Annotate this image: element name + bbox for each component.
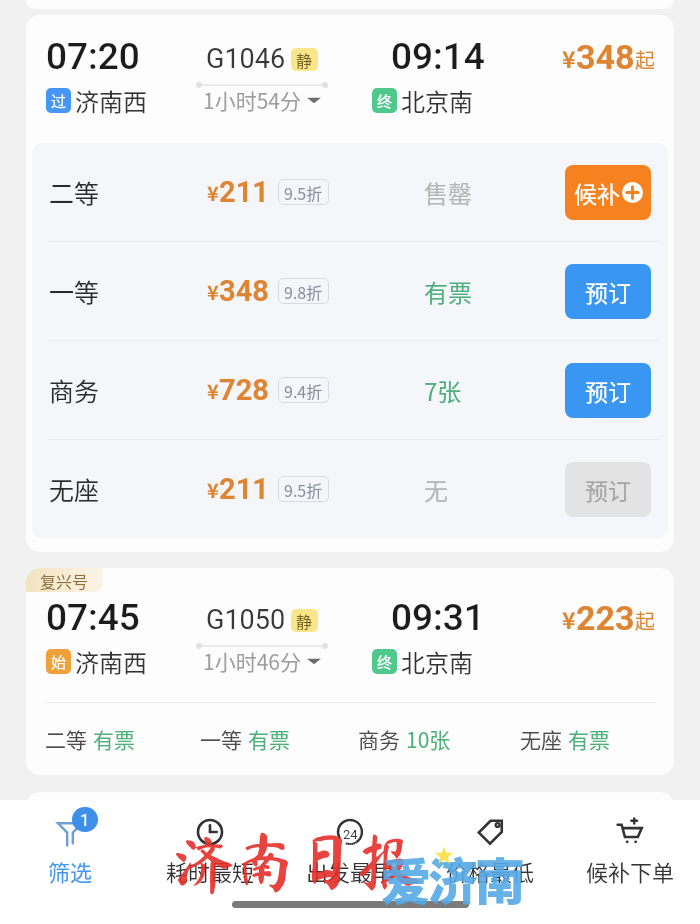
button[interactable]: 候补 (565, 165, 651, 220)
staticText: 耗时最短 (166, 855, 255, 887)
staticText: ¥ (562, 602, 576, 635)
staticText: 有票 (424, 274, 472, 309)
button[interactable]: 一等 (200, 724, 290, 754)
button[interactable]: 无座 (520, 724, 610, 754)
staticText: 济南西 (75, 83, 147, 118)
staticText: 爱济南 (381, 842, 522, 914)
staticText: 候补 (574, 176, 620, 209)
staticText: 价格最低 (446, 855, 535, 887)
button[interactable]: 商务 (358, 724, 451, 754)
staticText: 09:14 (391, 35, 485, 78)
staticText: 筛选 (48, 855, 93, 887)
staticText: 10张 (406, 724, 451, 754)
staticText: G1046 (206, 43, 286, 75)
staticText: 9.8折 (284, 280, 323, 303)
button[interactable]: 二等 (45, 724, 135, 754)
staticText: 07:20 (46, 35, 140, 78)
staticText: G1050 (206, 604, 286, 636)
staticText: 有票 (93, 724, 135, 754)
staticText: 静 (296, 48, 313, 71)
staticText: 211 (219, 472, 269, 506)
staticText: 211 (219, 175, 269, 209)
staticText: 起 (635, 45, 655, 74)
staticText: 预订 (585, 374, 631, 407)
button[interactable]: 一等 (32, 242, 668, 340)
staticText: 9.5折 (284, 181, 323, 204)
button[interactable]: 候补下单 (560, 800, 700, 887)
staticText: 1小时54分 (203, 85, 301, 115)
staticText: 1小时46分 (203, 646, 301, 676)
staticText: 商务 (49, 372, 100, 408)
button[interactable]: 07:20 (26, 15, 674, 552)
staticText: 二等 (49, 174, 100, 210)
staticText: 预订 (585, 275, 631, 308)
button[interactable]: 二等 (32, 143, 668, 241)
staticText: 起 (635, 606, 655, 635)
staticText: 223 (576, 598, 635, 638)
staticText: ¥ (207, 277, 219, 306)
button[interactable]: 无座 (32, 440, 668, 538)
staticText: 24 (343, 827, 358, 842)
staticText: 无座 (49, 471, 100, 507)
staticText: 348 (219, 274, 269, 308)
button[interactable]: 耗时最短 (140, 800, 280, 887)
staticText: 济南日报 (170, 828, 418, 894)
staticText: 二等 (45, 724, 87, 754)
staticText: 复兴号 (40, 569, 89, 592)
staticText: 9.4折 (284, 379, 323, 402)
button[interactable]: 商务 (32, 341, 668, 439)
button[interactable]: 筛选 (0, 800, 140, 887)
staticText: 终 (377, 651, 393, 673)
staticText: ¥ (562, 41, 576, 74)
staticText: 有票 (248, 724, 290, 754)
staticText: 出发最早 (306, 855, 395, 887)
button[interactable]: 出发最早 (280, 800, 420, 887)
staticText: 始 (51, 651, 67, 673)
staticText: 有票 (568, 724, 610, 754)
staticText: 过 (51, 90, 67, 112)
staticText: 一等 (200, 724, 242, 754)
staticText: ¥ (207, 178, 219, 207)
button[interactable]: 预订 (565, 462, 651, 517)
staticText: 终 (377, 90, 393, 112)
staticText: 09:31 (391, 596, 485, 639)
staticText: 7张 (424, 373, 462, 408)
staticText: 商务 (358, 724, 400, 754)
button[interactable]: 价格最低 (420, 800, 560, 887)
staticText: 无 (424, 472, 448, 507)
staticText: 一等 (49, 273, 100, 309)
staticText: 07:45 (46, 596, 140, 639)
staticText: 售罄 (424, 175, 472, 210)
staticText: 348 (576, 37, 635, 77)
staticText: 静 (296, 609, 313, 632)
staticText: ¥ (207, 475, 219, 504)
staticText: 北京南 (401, 644, 473, 679)
staticText: 预订 (585, 473, 631, 506)
staticText: 1 (80, 810, 90, 830)
staticText: 候补下单 (586, 855, 675, 887)
button[interactable]: 复兴号 (26, 568, 674, 775)
button[interactable]: 预订 (565, 363, 651, 418)
staticText: 济南西 (75, 644, 147, 679)
staticText: 无座 (520, 724, 562, 754)
staticText: 9.5折 (284, 478, 323, 501)
button[interactable]: 预订 (565, 264, 651, 319)
staticText: 728 (219, 373, 269, 407)
staticText: 北京南 (401, 83, 473, 118)
staticText: ¥ (207, 376, 219, 405)
